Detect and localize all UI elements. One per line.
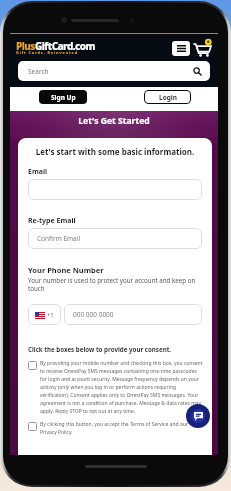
button[interactable]: Confirm Email — [28, 228, 202, 249]
staticText: By providing your mobile number and chec… — [40, 360, 204, 415]
button[interactable]: 000 000 0000 — [64, 304, 202, 325]
button[interactable]: By clicking this button, you accept the … — [28, 421, 204, 436]
staticText: By clicking this button, you accept the … — [40, 421, 204, 436]
button[interactable]: By providing your mobile number and chec… — [28, 360, 204, 415]
staticText: Your number is used to protect your acco… — [28, 276, 202, 292]
staticText: Let's start with some basic information. — [18, 146, 212, 157]
button[interactable]: Login — [144, 90, 191, 104]
staticText: Login — [159, 93, 177, 102]
staticText: Sign Up — [51, 93, 76, 102]
staticText: Gift Cards. Reinvented — [16, 50, 79, 55]
button[interactable]: Cart — [193, 39, 211, 57]
button[interactable]: Email — [28, 179, 202, 200]
button[interactable]: Chat support — [186, 404, 210, 428]
button[interactable]: Search — [18, 61, 210, 81]
staticText: Your Phone Number — [28, 265, 104, 275]
staticText: Click the boxes below to provide your co… — [28, 345, 172, 353]
staticText: GiftCard.com — [35, 39, 95, 53]
staticText: Email — [28, 167, 48, 177]
staticText: Confirm Email — [37, 234, 81, 243]
staticText: +1 — [47, 311, 54, 319]
staticText: Plus — [16, 39, 35, 53]
button[interactable]: Sign Up — [39, 90, 87, 104]
staticText: Re-type Email — [28, 216, 76, 226]
staticText: Search — [28, 67, 49, 76]
staticText: 000 000 0000 — [73, 310, 114, 319]
staticText: Let's Get Started — [10, 115, 218, 127]
button[interactable]: Menu — [172, 41, 190, 56]
button[interactable]: Country code — [28, 304, 61, 325]
